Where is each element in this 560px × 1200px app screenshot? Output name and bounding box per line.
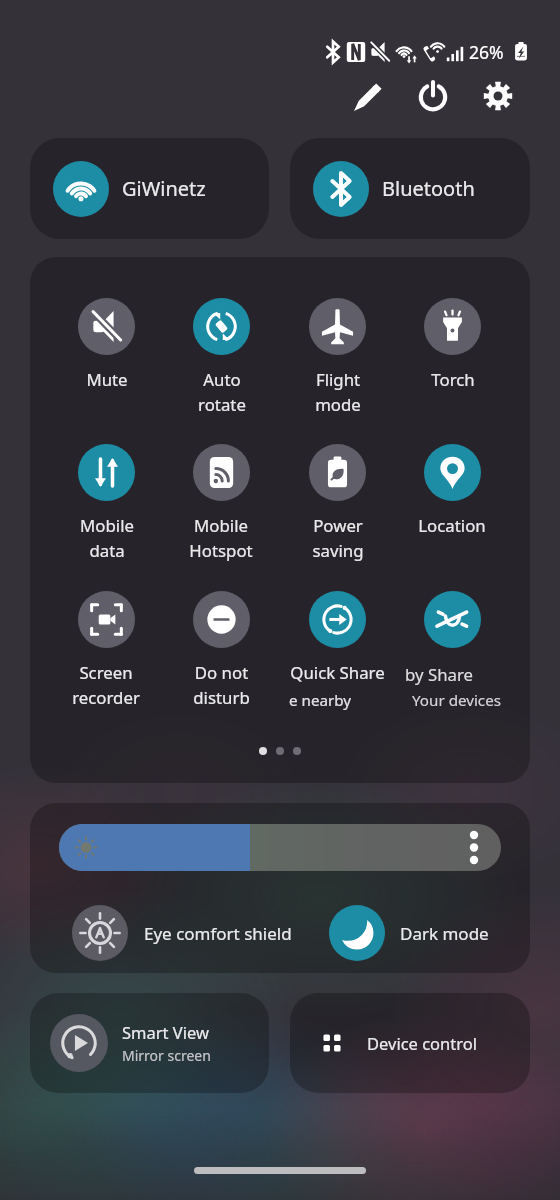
button[interactable]: Mobile data — [52, 444, 160, 572]
staticText: Bluetooth — [382, 175, 475, 202]
button[interactable]: Settings — [486, 70, 538, 122]
button[interactable]: Screen recorder — [52, 591, 160, 719]
staticText: Screen recorder — [72, 661, 140, 709]
button[interactable]: Location — [398, 444, 506, 572]
staticText: Mute — [86, 368, 128, 391]
button[interactable]: Device control — [290, 993, 530, 1093]
staticText: Dark mode — [400, 922, 489, 945]
button[interactable]: Quick Share — [283, 591, 391, 719]
staticText: 26% — [469, 40, 504, 64]
button[interactable]: Power off — [422, 70, 474, 122]
staticText: Smart View — [122, 1021, 209, 1043]
staticText: Mobile data — [80, 514, 134, 562]
staticText: Your devices — [412, 690, 501, 711]
staticText: Torch — [431, 368, 475, 391]
staticText: Auto rotate — [198, 368, 246, 416]
staticText: Mirror screen — [122, 1046, 211, 1065]
staticText: Device control — [367, 1032, 477, 1054]
button[interactable]: Edit quick settings — [358, 70, 410, 122]
button[interactable]: Bluetooth — [290, 138, 530, 239]
button[interactable]: Dark mode — [329, 902, 489, 964]
staticText: Mobile Hotspot — [189, 514, 253, 562]
button[interactable]: Mute — [52, 298, 160, 426]
staticText: e nearby — [289, 690, 352, 711]
staticText: GiWinetz — [122, 175, 206, 202]
button[interactable] — [398, 591, 506, 719]
staticText: Eye comfort shield — [144, 922, 292, 945]
staticText: Quick Share — [290, 661, 385, 684]
button[interactable]: Flight mode — [283, 298, 391, 426]
button[interactable]: GiWinetz — [30, 138, 269, 239]
button[interactable]: Mobile Hotspot — [167, 444, 275, 572]
button[interactable]: Do not disturb — [167, 591, 275, 719]
staticText: Do not disturb — [193, 661, 250, 709]
staticText: Location — [418, 514, 486, 537]
button[interactable]: Power saving — [283, 444, 391, 572]
button[interactable]: Torch — [398, 298, 506, 426]
button[interactable]: Eye comfort shield — [72, 902, 292, 964]
staticText: Flight mode — [315, 368, 361, 416]
staticText: Power saving — [312, 514, 364, 562]
staticText: by Share — [405, 663, 474, 686]
button[interactable] — [59, 824, 501, 871]
button[interactable]: Smart View — [30, 993, 269, 1093]
button[interactable]: Auto rotate — [167, 298, 275, 426]
